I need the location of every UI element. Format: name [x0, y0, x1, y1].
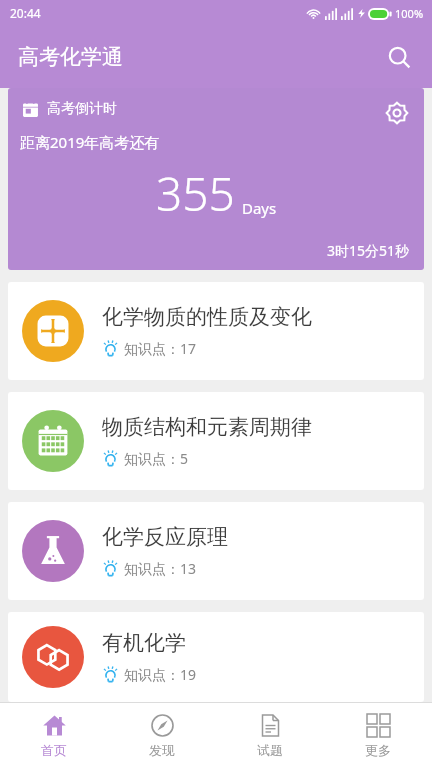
staticText: 知识点：5 [124, 449, 189, 468]
staticText: 化学物质的性质及变化 [102, 304, 312, 330]
button[interactable]: 试题 [216, 703, 324, 768]
staticText: 发现 [149, 742, 175, 758]
button[interactable]: 有机化学 [8, 612, 424, 702]
staticText: 20:44 [10, 5, 41, 21]
staticText: 距离2019年高考还有 [20, 132, 160, 152]
button[interactable]: Search [376, 34, 422, 80]
staticText: 知识点：19 [124, 665, 197, 684]
staticText: 3时15分51秒 [327, 241, 410, 260]
staticText: 化学反应原理 [102, 524, 228, 550]
button[interactable]: 高考倒计时 [8, 88, 424, 270]
staticText: 首页 [41, 742, 67, 758]
button[interactable]: 化学反应原理 [8, 502, 424, 600]
staticText: 高考化学通 [18, 44, 123, 70]
staticText: 有机化学 [102, 630, 186, 656]
button[interactable]: Settings [378, 94, 416, 132]
staticText: Days [242, 198, 277, 218]
staticText: 试题 [257, 742, 283, 758]
staticText: 更多 [365, 742, 391, 758]
staticText: 知识点：17 [124, 339, 197, 358]
button[interactable]: 发现 [108, 703, 216, 768]
button[interactable]: 物质结构和元素周期律 [8, 392, 424, 490]
staticText: 知识点：13 [124, 559, 197, 578]
button[interactable]: 化学物质的性质及变化 [8, 282, 424, 380]
button[interactable]: 更多 [324, 703, 432, 768]
staticText: 100% [395, 6, 424, 21]
button[interactable]: 首页 [0, 703, 108, 768]
staticText: 高考倒计时 [47, 100, 117, 118]
staticText: 355 [156, 162, 235, 225]
staticText: 物质结构和元素周期律 [102, 414, 312, 440]
